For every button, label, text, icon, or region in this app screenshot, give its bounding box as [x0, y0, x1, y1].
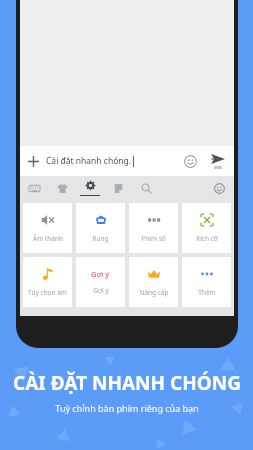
button[interactable]: Add attachment — [20, 146, 46, 176]
button[interactable]: Gợi ý — [76, 257, 125, 307]
button[interactable]: Emoji panel — [204, 176, 234, 200]
button[interactable]: Rung — [76, 203, 125, 253]
staticText: Cài đặt nhanh chóng. — [46, 155, 132, 167]
button[interactable]: Send SMS — [202, 146, 234, 176]
button[interactable]: Settings — [76, 176, 104, 200]
button[interactable]: Thêm — [182, 257, 231, 307]
staticText: Tùy chọn âm — [28, 288, 67, 297]
button[interactable]: Phím số — [129, 203, 178, 253]
staticText: Gợi ý — [91, 269, 110, 279]
staticText: Thêm — [198, 288, 216, 297]
staticText: CÀI ĐẶT NHANH CHÓNG — [13, 370, 241, 396]
staticText: Gợi ý — [93, 286, 109, 295]
button[interactable]: Kích cỡ — [182, 203, 231, 253]
staticText: Phím số — [141, 234, 166, 243]
button[interactable]: Keyboard — [20, 176, 48, 200]
button[interactable]: Âm thanh — [23, 203, 72, 253]
staticText: SMS — [214, 165, 223, 170]
button[interactable]: Themes — [48, 176, 76, 200]
staticText: Kích cỡ — [196, 234, 218, 243]
staticText: Tuỳ chỉnh bàn phím riêng của bạn — [55, 402, 199, 414]
button[interactable]: Nâng cấp — [129, 257, 178, 307]
button[interactable]: Stickers — [104, 176, 132, 200]
button[interactable]: Emoji — [178, 146, 202, 176]
staticText: Âm thanh — [33, 234, 63, 243]
button[interactable]: Cài đặt nhanh chóng. — [46, 146, 178, 176]
staticText: Nâng cấp — [139, 288, 169, 297]
button[interactable]: Tùy chọn âm — [23, 257, 72, 307]
button[interactable]: Search — [132, 176, 160, 200]
staticText: Rung — [92, 234, 109, 243]
